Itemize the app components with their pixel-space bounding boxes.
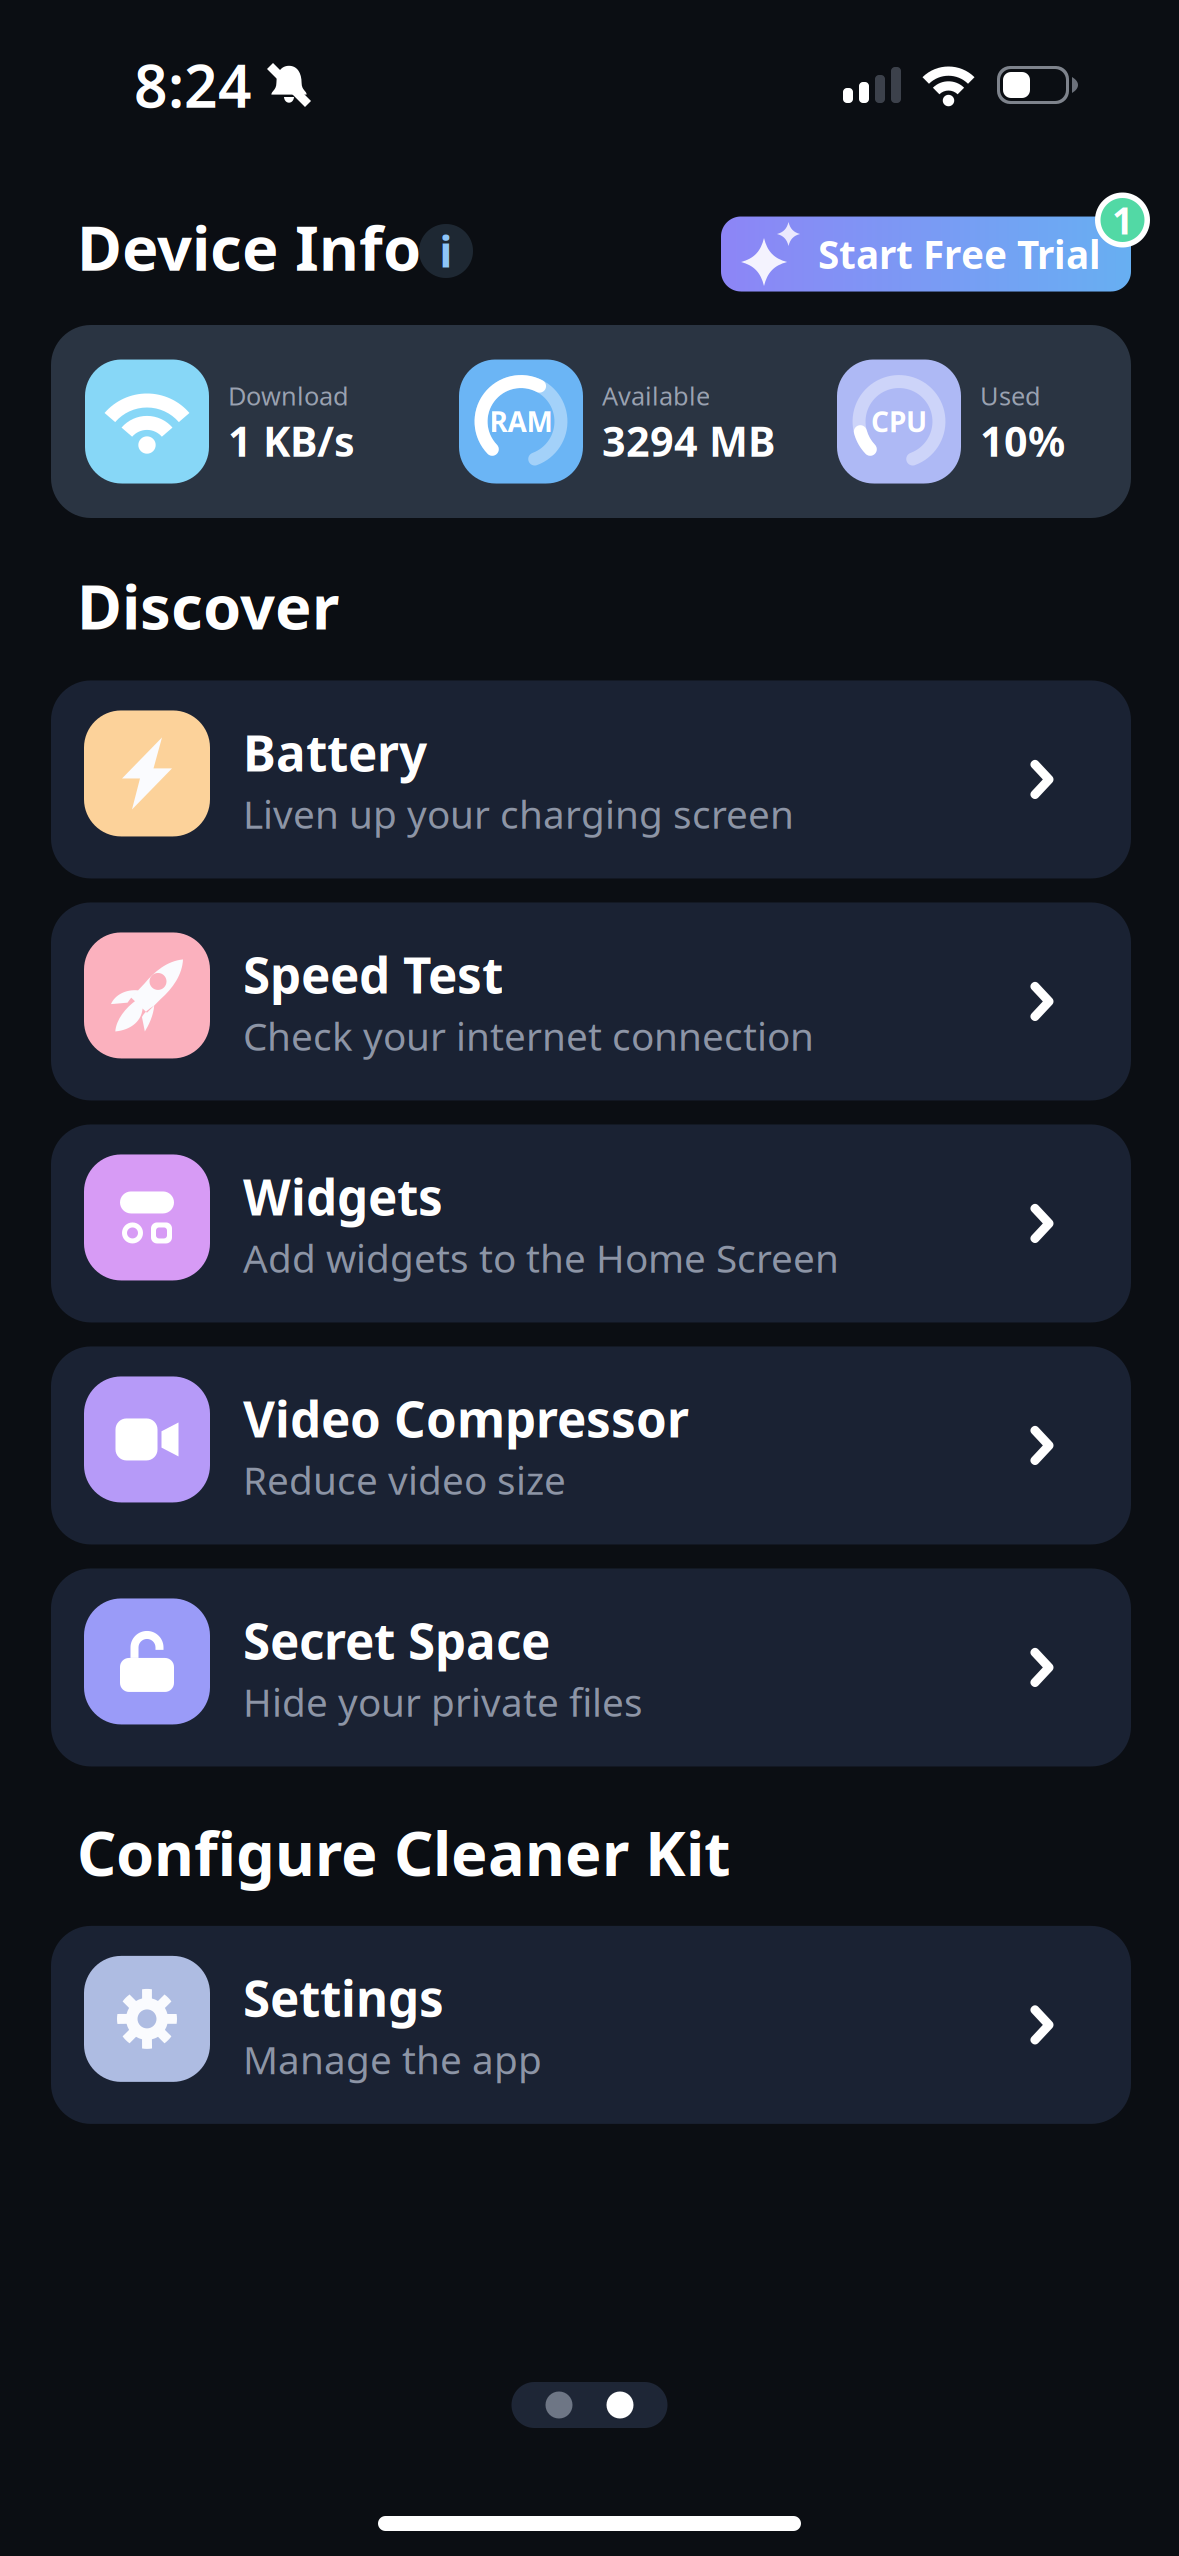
staticText: Battery bbox=[243, 719, 427, 785]
staticText: Hide your private files bbox=[243, 1676, 643, 1727]
button[interactable]: Widgets bbox=[51, 1124, 1131, 1322]
staticText: RAM bbox=[489, 403, 552, 440]
button[interactable]: Start Free Trial bbox=[721, 216, 1131, 291]
staticText: CPU bbox=[871, 403, 927, 440]
staticText: Used bbox=[980, 379, 1041, 412]
staticText: Configure Cleaner Kit bbox=[77, 1811, 731, 1893]
staticText: Available bbox=[602, 379, 710, 412]
staticText: Download bbox=[228, 379, 349, 412]
staticText: Add widgets to the Home Screen bbox=[243, 1232, 839, 1283]
staticText: Widgets bbox=[243, 1163, 443, 1229]
staticText: Secret Space bbox=[243, 1607, 550, 1673]
staticText: Discover bbox=[77, 565, 339, 646]
staticText: 10% bbox=[980, 413, 1065, 468]
staticText: Check your internet connection bbox=[243, 1010, 814, 1061]
staticText: Device Info bbox=[77, 206, 421, 288]
staticText: Speed Test bbox=[243, 941, 503, 1007]
button[interactable]: Battery bbox=[51, 680, 1131, 878]
staticText: Reduce video size bbox=[243, 1454, 566, 1505]
button[interactable]: Settings bbox=[51, 1926, 1131, 2124]
staticText: i bbox=[439, 223, 452, 279]
staticText: Start Free Trial bbox=[818, 228, 1101, 280]
staticText: Video Compressor bbox=[243, 1385, 689, 1451]
staticText: 1 bbox=[1112, 195, 1133, 245]
staticText: Manage the app bbox=[243, 2033, 542, 2085]
staticText: 8:24 bbox=[134, 46, 252, 124]
button[interactable]: Speed Test bbox=[51, 902, 1131, 1100]
staticText: 3294 MB bbox=[602, 413, 775, 468]
staticText: Liven up your charging screen bbox=[243, 788, 794, 839]
staticText: 1 KB/s bbox=[228, 413, 355, 468]
button[interactable]: Secret Space bbox=[51, 1568, 1131, 1766]
button[interactable]: Video Compressor bbox=[51, 1346, 1131, 1544]
staticText: Settings bbox=[243, 1965, 444, 2030]
